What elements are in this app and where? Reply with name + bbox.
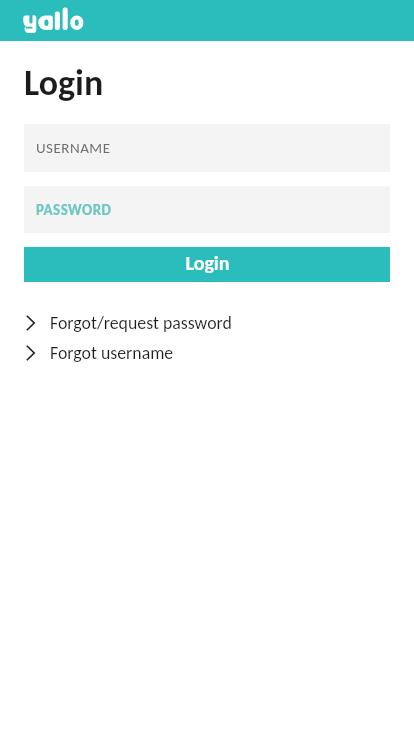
button[interactable]: PASSWORD [24,186,390,233]
button[interactable]: USERNAME [24,124,390,172]
other: yallo [0,0,414,41]
staticText: PASSWORD [36,201,112,219]
staticText: Login [185,251,230,275]
staticText: USERNAME [36,139,111,157]
button[interactable]: Forgot/request password [0,308,414,338]
staticText: Login [24,61,104,105]
staticText: Forgot username [50,342,174,364]
staticText: Forgot/request password [50,312,232,334]
button[interactable]: Login [24,247,390,282]
button[interactable]: Forgot username [0,338,414,368]
